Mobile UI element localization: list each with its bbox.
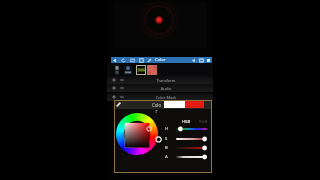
button[interactable]: Layers: [130, 58, 135, 63]
staticText: Transform: [151, 78, 181, 83]
button[interactable]: A: [165, 154, 210, 160]
button[interactable]: Mute: [192, 58, 197, 63]
button[interactable]: H: [165, 126, 210, 132]
button[interactable]: Color: [154, 57, 167, 63]
button[interactable]: S: [165, 136, 210, 142]
staticText: S: [165, 136, 168, 142]
button[interactable]: Crop: [139, 58, 144, 63]
button[interactable]: Export: [206, 58, 211, 63]
button[interactable]: Undo: [121, 58, 126, 63]
button[interactable]: Eyedropper: [115, 101, 122, 108]
staticText: RGB: [199, 119, 208, 125]
button[interactable]: Pen: [147, 58, 152, 63]
button[interactable]: RGB: [198, 119, 209, 125]
button[interactable]: Fullscreen: [199, 58, 204, 63]
staticText: HSB: [182, 119, 191, 125]
staticText: Audio: [151, 86, 181, 91]
button[interactable]: Clip 4: [147, 65, 157, 75]
button[interactable]: B: [165, 145, 210, 151]
staticText: B: [165, 145, 168, 151]
staticText: Color: [151, 102, 162, 114]
button[interactable]: Color Mask: [107, 93, 213, 101]
button[interactable]: Clip 2: [124, 65, 132, 75]
button[interactable]: Back: [112, 58, 117, 63]
staticText: A: [165, 154, 168, 160]
staticText: H: [165, 126, 169, 132]
button[interactable]: Transform: [107, 76, 213, 84]
staticText: Color: [155, 57, 166, 63]
staticText: Color Mask: [151, 95, 181, 100]
button[interactable]: Selected clip: [137, 66, 145, 74]
button[interactable]: HSB: [181, 119, 192, 125]
button[interactable]: Clip 1: [115, 65, 119, 75]
button[interactable]: Audio: [107, 84, 213, 92]
